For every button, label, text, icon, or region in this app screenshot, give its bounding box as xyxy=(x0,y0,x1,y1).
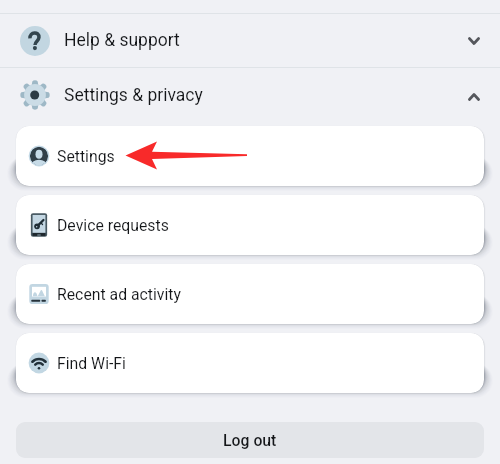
button[interactable]: Find Wi-Fi xyxy=(16,333,484,393)
button[interactable]: Collapse Settings and privacy xyxy=(462,85,486,109)
staticText: Find Wi-Fi xyxy=(57,354,126,373)
staticText: Device requests xyxy=(57,216,169,235)
staticText: Help & support xyxy=(64,30,180,51)
staticText: Recent ad activity xyxy=(57,285,181,304)
button[interactable]: Expand Help and support xyxy=(462,29,486,53)
staticText: Settings & privacy xyxy=(64,85,203,106)
button[interactable]: Settings xyxy=(16,126,484,186)
button[interactable]: Log out xyxy=(16,422,484,458)
button[interactable]: Recent ad activity xyxy=(16,264,484,324)
button[interactable]: Device requests xyxy=(16,195,484,255)
button[interactable]: Help & support xyxy=(0,14,500,67)
button[interactable]: Settings & privacy xyxy=(0,68,500,122)
staticText: Settings xyxy=(57,147,115,166)
staticText: Log out xyxy=(223,431,277,450)
